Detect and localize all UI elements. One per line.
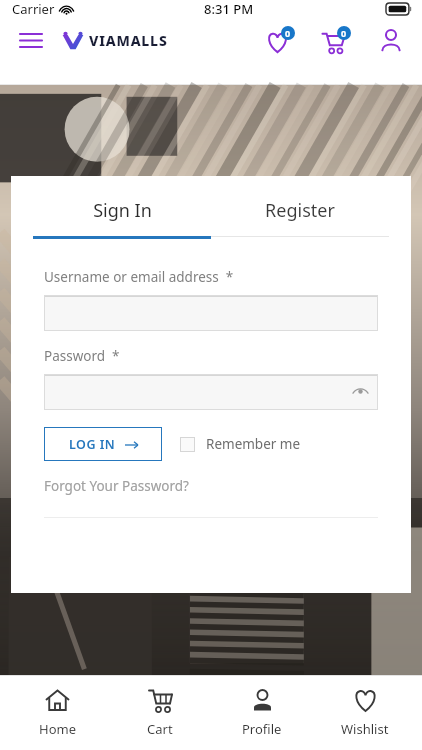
staticText: Cart bbox=[147, 720, 173, 738]
button[interactable]: Cart, 0 items bbox=[318, 22, 354, 58]
button[interactable]: VIAMALLS bbox=[62, 31, 168, 50]
button[interactable] bbox=[44, 295, 378, 331]
staticText: Profile bbox=[242, 720, 282, 738]
staticText: Wishlist bbox=[341, 720, 389, 738]
button[interactable]: LOG IN bbox=[44, 427, 162, 461]
button[interactable]: Forgot Your Password? bbox=[44, 477, 189, 495]
staticText: Sign In bbox=[93, 198, 152, 223]
button[interactable]: Sign In bbox=[33, 198, 211, 239]
staticText: 8:31 PM bbox=[204, 0, 254, 18]
button[interactable]: Wishlist, 0 items bbox=[262, 22, 298, 58]
staticText: Remember me bbox=[206, 435, 301, 453]
button[interactable]: Account bbox=[374, 23, 408, 57]
staticText: Carrier bbox=[12, 0, 55, 18]
staticText: Username or email address * bbox=[44, 268, 234, 286]
button[interactable] bbox=[44, 374, 378, 410]
staticText: Register bbox=[265, 198, 335, 223]
button[interactable]: Remember me bbox=[180, 435, 301, 453]
staticText: 0 bbox=[285, 27, 291, 39]
button[interactable]: Cart bbox=[115, 688, 205, 738]
staticText: 0 bbox=[341, 27, 347, 39]
staticText: VIAMALLS bbox=[89, 31, 168, 50]
button[interactable]: Wishlist bbox=[320, 688, 410, 738]
staticText: Password * bbox=[44, 347, 120, 365]
button[interactable]: Home bbox=[12, 688, 102, 738]
button[interactable]: Profile bbox=[217, 688, 307, 738]
button[interactable]: Open menu bbox=[14, 23, 48, 57]
staticText: Home bbox=[39, 720, 76, 738]
staticText: LOG IN bbox=[69, 436, 116, 453]
button[interactable]: Register bbox=[211, 198, 389, 237]
